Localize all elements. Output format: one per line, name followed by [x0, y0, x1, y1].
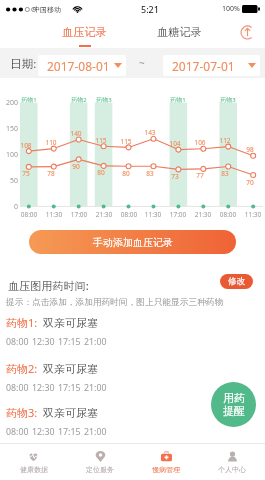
staticText: 双亲可尿塞: [43, 316, 98, 330]
staticText: 定位服务: [86, 465, 114, 474]
staticText: 11:30: [141, 210, 165, 219]
staticText: 药物2: [67, 96, 91, 104]
staticText: 日期:: [10, 56, 37, 72]
staticText: 用药 提醒: [223, 391, 245, 419]
staticText: 200: [3, 98, 18, 108]
button[interactable]: 用药 提醒: [211, 382, 256, 427]
staticText: 08:00: [6, 426, 29, 438]
staticText: 12:30: [32, 336, 55, 348]
button[interactable]: 2017-07-01: [163, 55, 260, 76]
staticText: 115: [93, 136, 109, 145]
button[interactable]: 药物1:: [0, 315, 265, 348]
staticText: 70: [242, 178, 258, 187]
staticText: 100%: [222, 4, 240, 14]
staticText: 73: [167, 172, 183, 181]
staticText: 2017-08-01: [47, 58, 110, 74]
staticText: 21:00: [84, 426, 107, 438]
staticText: 药物1: [17, 96, 41, 104]
button[interactable]: 修改: [220, 274, 253, 289]
button[interactable]: 手动添加血压记录: [29, 230, 236, 254]
staticText: 5:21: [141, 3, 159, 15]
staticText: ~: [139, 56, 145, 70]
staticText: 0: [3, 202, 18, 212]
staticText: 药物1:: [6, 315, 38, 330]
staticText: 个人中心: [218, 465, 246, 474]
button[interactable]: 个人中心: [199, 444, 265, 480]
staticText: 血糖记录: [157, 25, 202, 39]
staticText: 80: [118, 169, 134, 178]
staticText: 21:00: [84, 336, 107, 348]
staticText: 17:15: [58, 426, 81, 438]
staticText: 17:00: [67, 210, 91, 219]
staticText: 100: [3, 150, 18, 160]
staticText: 17:15: [58, 382, 81, 394]
staticText: 21:00: [84, 382, 107, 394]
staticText: 83: [217, 169, 233, 178]
staticText: 药物1: [166, 96, 190, 104]
staticText: 双亲可尿塞: [43, 362, 98, 376]
staticText: 12:30: [32, 382, 55, 394]
staticText: 修改: [228, 276, 245, 287]
staticText: 17:00: [166, 210, 190, 219]
staticText: 104: [167, 139, 183, 148]
staticText: 08:00: [216, 210, 240, 219]
staticText: 11:30: [241, 210, 265, 219]
staticText: 106: [192, 138, 208, 147]
staticText: 健康数据: [20, 465, 48, 474]
staticText: 手动添加血压记录: [93, 236, 173, 249]
staticText: 11:30: [42, 210, 66, 219]
staticText: 17:15: [58, 336, 81, 348]
staticText: 83: [142, 169, 158, 178]
staticText: 2017-07-01: [172, 58, 235, 74]
staticText: 98: [242, 145, 258, 154]
staticText: 血压记录: [62, 25, 107, 39]
staticText: 75: [18, 169, 34, 178]
staticText: 药物3: [216, 96, 240, 104]
staticText: 08:00: [117, 210, 141, 219]
staticText: 140: [68, 129, 84, 138]
staticText: 110: [43, 138, 59, 147]
staticText: 08:00: [6, 382, 29, 394]
staticText: 药物2:: [6, 361, 38, 376]
staticText: 药物3:: [6, 405, 38, 420]
staticText: 77: [192, 171, 208, 180]
staticText: 08:00: [6, 336, 29, 348]
staticText: 12:30: [32, 426, 55, 438]
button[interactable]: 上传: [237, 22, 258, 43]
staticText: 80: [93, 168, 109, 177]
staticText: 78: [43, 169, 59, 178]
staticText: 药物3: [92, 96, 116, 104]
staticText: 21:30: [191, 210, 215, 219]
staticText: 50: [3, 176, 18, 186]
staticText: 21:30: [92, 210, 116, 219]
button[interactable]: 2017-08-01: [38, 55, 126, 76]
staticText: 143: [142, 128, 158, 137]
button[interactable]: 健康数据: [0, 444, 67, 480]
staticText: 112: [217, 136, 233, 145]
button[interactable]: [0, 18, 88, 48]
staticText: 115: [118, 137, 134, 146]
button[interactable]: 血糖记录: [152, 18, 206, 48]
staticText: 90: [68, 162, 84, 171]
button[interactable]: 血压记录: [57, 18, 111, 48]
button[interactable]: 药物3:: [0, 405, 265, 438]
button[interactable]: 定位服务: [67, 444, 133, 480]
staticText: 150: [3, 124, 18, 134]
staticText: 双亲可尿塞: [43, 406, 98, 420]
staticText: 提示：点击添加，添加用药时间，图上只能显示三种药物: [6, 297, 224, 308]
button[interactable]: 药物2:: [0, 361, 265, 394]
staticText: 108: [18, 141, 34, 150]
staticText: 慢病管理: [152, 465, 180, 474]
staticText: 血压图用药时间:: [8, 278, 89, 293]
staticText: 中国移动: [33, 5, 61, 14]
staticText: 08:00: [17, 210, 41, 219]
button[interactable]: 慢病管理: [133, 444, 199, 480]
